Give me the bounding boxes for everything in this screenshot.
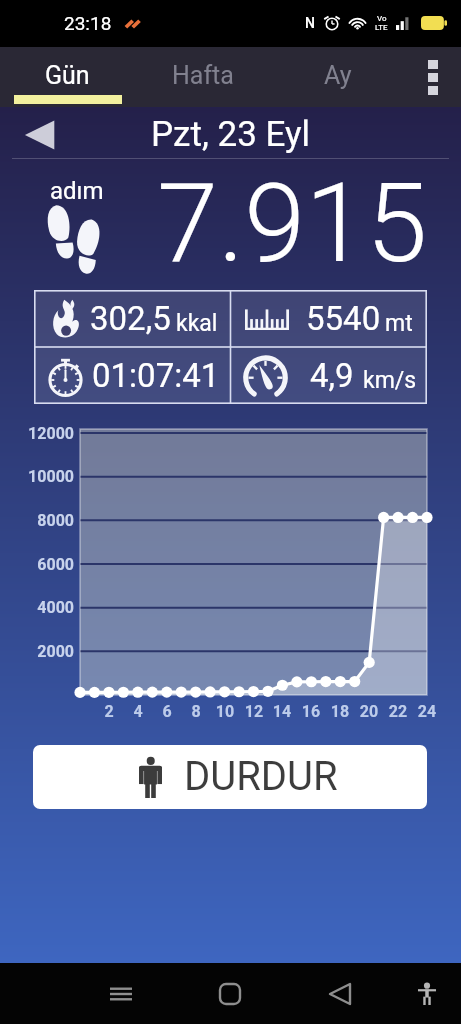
staticText: 01:07:41 xyxy=(92,356,220,395)
staticText: 4000 xyxy=(0,598,74,617)
button[interactable]: 5540 xyxy=(231,290,427,347)
staticText: 23:18 xyxy=(64,12,112,34)
staticText: 14 xyxy=(262,702,302,721)
staticText: 12 xyxy=(234,702,274,721)
staticText: 20 xyxy=(349,702,389,721)
staticText: Vo xyxy=(377,14,387,23)
button[interactable]: Gün xyxy=(0,47,135,107)
staticText: Pzt, 23 Eyl xyxy=(151,114,311,155)
staticText: 10 xyxy=(205,702,245,721)
staticText: 22 xyxy=(378,702,418,721)
button[interactable]: 4,9 xyxy=(231,347,427,404)
staticText: N xyxy=(305,15,315,31)
button[interactable]: Ay xyxy=(270,47,405,107)
button[interactable]: Home xyxy=(200,963,260,1024)
staticText: 6000 xyxy=(0,555,74,574)
staticText: 2 xyxy=(89,702,129,721)
staticText: 24 xyxy=(407,702,447,721)
staticText: DURDUR xyxy=(184,753,338,800)
staticText: Gün xyxy=(45,61,90,90)
staticText: 5540 xyxy=(306,299,381,338)
button[interactable]: 01:07:41 xyxy=(34,347,230,404)
staticText: 8 xyxy=(176,702,216,721)
staticText: 16 xyxy=(291,702,331,721)
staticText: kkal xyxy=(176,310,218,337)
button[interactable]: Previous day xyxy=(18,115,64,155)
button[interactable]: Menu xyxy=(91,963,151,1024)
button[interactable]: More options xyxy=(405,47,461,107)
staticText: 8000 xyxy=(0,511,74,530)
button[interactable]: 302,5 xyxy=(34,290,230,347)
staticText: 12000 xyxy=(0,424,74,443)
button[interactable]: Hafta xyxy=(135,47,270,107)
button[interactable]: Accessibility xyxy=(397,963,457,1024)
staticText: Ay xyxy=(324,61,352,90)
staticText: 4 xyxy=(118,702,158,721)
staticText: 18 xyxy=(320,702,360,721)
staticText: 6 xyxy=(147,702,187,721)
staticText: 10000 xyxy=(0,467,74,486)
staticText: 2000 xyxy=(0,642,74,661)
staticText: 7.915 xyxy=(157,159,428,274)
staticText: km/s xyxy=(363,367,417,394)
button[interactable]: DURDUR xyxy=(33,745,427,809)
staticText: 4,9 xyxy=(310,356,354,395)
staticText: Hafta xyxy=(172,61,234,90)
staticText: LTE xyxy=(375,23,388,32)
button[interactable]: Back xyxy=(310,963,370,1024)
staticText: adım xyxy=(50,177,104,205)
staticText: mt xyxy=(385,310,413,337)
staticText: 302,5 xyxy=(90,299,171,338)
